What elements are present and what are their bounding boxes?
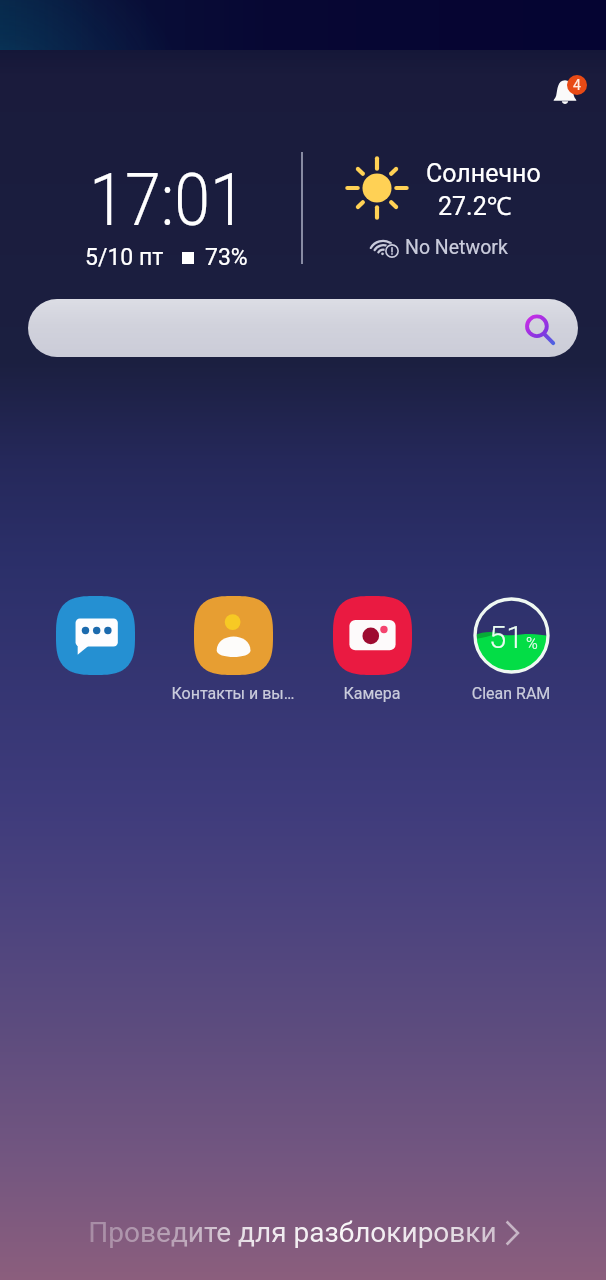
staticText: 73% — [205, 244, 248, 271]
button[interactable]: Контакты и вы… — [167, 595, 299, 707]
staticText: 27.2℃ — [438, 188, 512, 222]
staticText: 5/10 пт — [85, 244, 164, 271]
button[interactable]: Камера — [306, 595, 438, 707]
staticText: Clean RAM — [445, 684, 577, 703]
staticText: % — [526, 634, 538, 653]
staticText: Контакты и вы… — [167, 684, 299, 703]
button[interactable]: Search — [28, 299, 578, 357]
staticText: Проведите для разблокировки — [88, 1216, 497, 1249]
button[interactable]: Проведите для разблокировки — [0, 1210, 606, 1254]
staticText: Камера — [306, 684, 438, 703]
staticText: 17:01 — [89, 158, 246, 242]
staticText: 51 — [489, 619, 524, 655]
button[interactable]: 51 — [445, 595, 577, 707]
staticText: No Network — [405, 236, 508, 259]
button[interactable]: Notifications — [549, 68, 589, 108]
staticText: 4 — [573, 77, 581, 93]
staticText: Солнечно — [426, 159, 541, 188]
button[interactable] — [29, 595, 161, 707]
